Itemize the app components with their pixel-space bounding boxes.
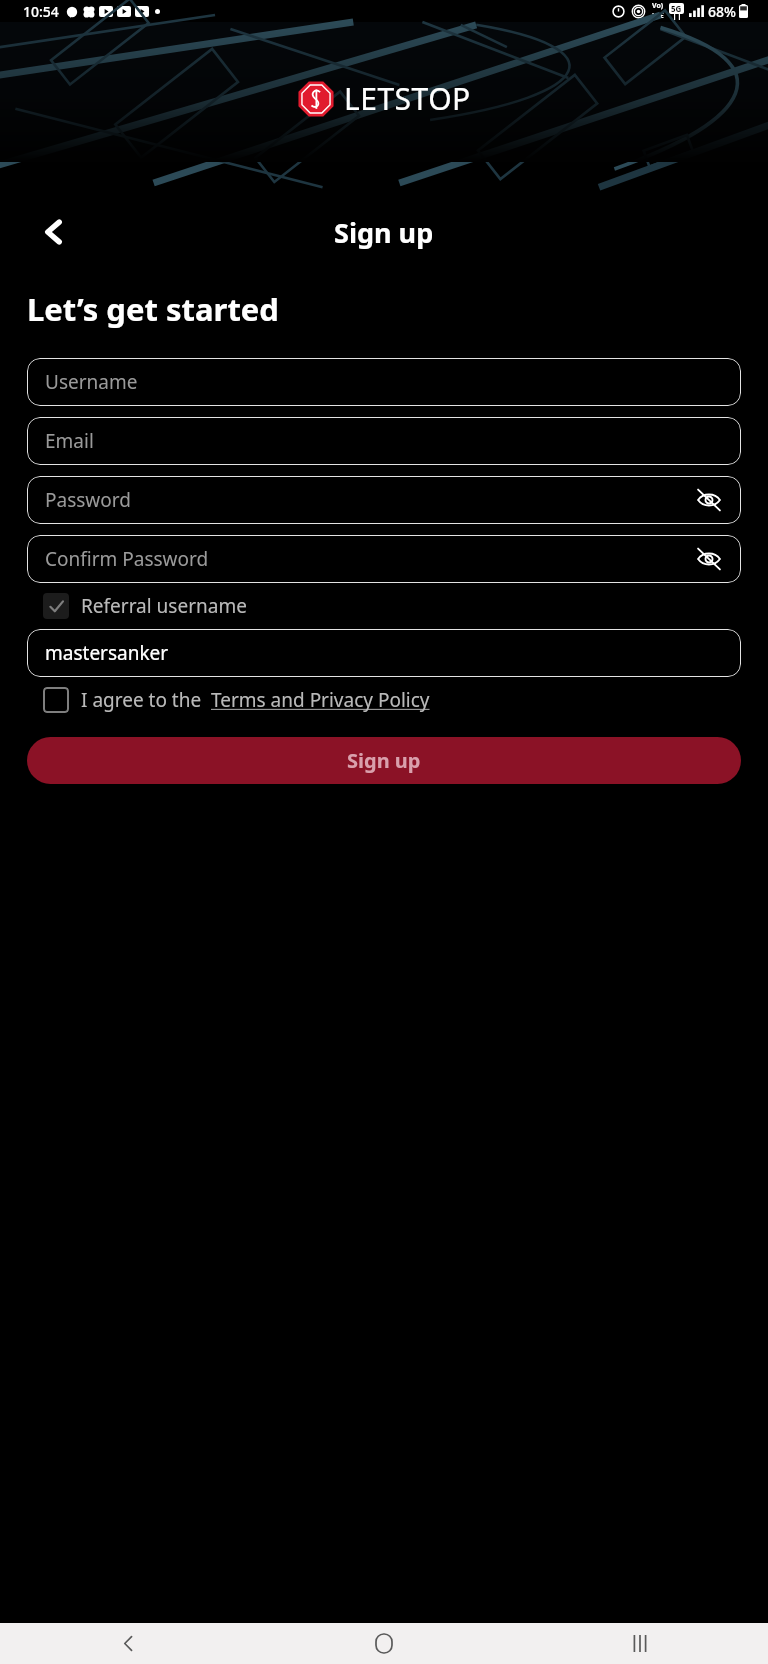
staticText: Vo) [652,1,664,11]
button[interactable]: Confirm Password [27,535,741,583]
staticText: 5G [671,3,682,14]
button[interactable]: Username [27,358,741,406]
staticText: Username [45,369,138,395]
button[interactable]: Back [30,208,78,256]
button[interactable]: Home [358,1623,410,1664]
staticText: 10:54 [23,2,59,21]
staticText: Referral username [81,593,247,619]
staticText: Password [45,487,131,513]
button[interactable]: Show password [691,482,727,518]
button[interactable]: Password [27,476,741,524]
button[interactable]: Back [102,1623,154,1664]
staticText: Sign up [334,214,434,251]
staticText: Email [45,428,94,454]
staticText: mastersanker [45,640,169,666]
staticText: 68% [708,2,736,21]
button[interactable]: Referral username [27,593,741,619]
staticText: I agree to the [81,687,202,713]
button[interactable]: I agree to the [27,687,741,713]
button[interactable]: mastersanker [27,629,741,677]
button[interactable]: Terms and Privacy Policy [211,687,430,713]
staticText: Sign up [347,747,421,774]
staticText: Confirm Password [45,546,209,572]
staticText: LTE [652,11,664,21]
staticText: LETSTOP [344,78,471,119]
button[interactable]: Sign up [27,737,741,784]
staticText: Let’s get started [27,288,279,330]
button[interactable]: Email [27,417,741,465]
button[interactable]: Recents [614,1623,666,1664]
button[interactable]: Show password [691,541,727,577]
